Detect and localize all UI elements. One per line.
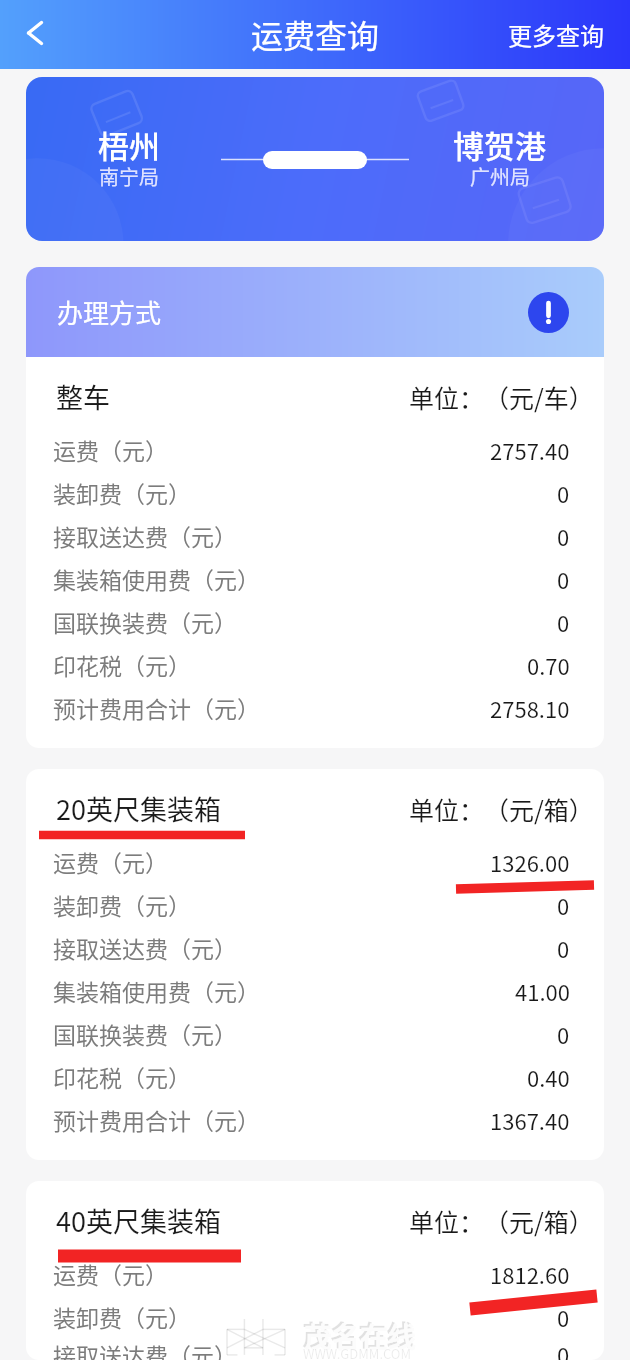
staticText: 运费查询 xyxy=(251,11,380,57)
staticText: 2757.40 xyxy=(490,434,570,466)
staticText: 博贺港 xyxy=(453,122,546,167)
staticText: 梧州 xyxy=(98,122,160,167)
staticText: 装卸费（元） xyxy=(53,1300,191,1333)
button[interactable]: 装卸费（元） xyxy=(26,883,604,926)
staticText: 接取送达费（元） xyxy=(53,1338,237,1360)
staticText: 办理方式 xyxy=(57,293,162,331)
button[interactable]: 更多查询 xyxy=(486,3,630,66)
staticText: 0 xyxy=(557,606,570,638)
button[interactable]: 印花税（元） xyxy=(26,1055,604,1098)
staticText: 接取送达费（元） xyxy=(53,931,237,964)
staticText: 运费（元） xyxy=(53,433,168,466)
staticText: 集装箱使用费（元） xyxy=(53,974,260,1007)
staticText: 41.00 xyxy=(515,975,570,1007)
staticText: 0 xyxy=(557,889,570,921)
staticText: 单位：（元/箱） xyxy=(409,1203,594,1239)
staticText: 国联换装费（元） xyxy=(53,605,237,638)
staticText: 0 xyxy=(557,520,570,552)
staticText: 装卸费（元） xyxy=(53,888,191,921)
button[interactable]: 梧州 xyxy=(26,77,604,241)
button[interactable]: 运费（元） xyxy=(26,840,604,883)
staticText: WWW.GDMM.COM xyxy=(303,1344,412,1360)
button[interactable]: 接取送达费（元） xyxy=(26,514,604,557)
staticText: 运费（元） xyxy=(53,845,168,878)
staticText: 预计费用合计（元） xyxy=(53,1103,260,1136)
staticText: 运费（元） xyxy=(53,1257,168,1290)
button[interactable]: 集装箱使用费（元） xyxy=(26,969,604,1012)
button[interactable]: 预计费用合计（元） xyxy=(26,686,604,729)
staticText: 2758.10 xyxy=(490,692,570,724)
button[interactable]: 接取送达费（元） xyxy=(26,1338,604,1360)
staticText: 1326.00 xyxy=(490,846,570,878)
staticText: 0 xyxy=(557,477,570,509)
staticText: 0 xyxy=(557,1338,570,1360)
button[interactable]: 接取送达费（元） xyxy=(26,926,604,969)
staticText: 0 xyxy=(557,1301,570,1333)
staticText: 单位：（元/箱） xyxy=(409,791,594,827)
button[interactable]: 集装箱使用费（元） xyxy=(26,557,604,600)
staticText: 1812.60 xyxy=(490,1258,570,1290)
staticText: 20英尺集装箱 xyxy=(56,789,221,828)
staticText: 更多查询 xyxy=(508,17,604,52)
button[interactable]: Info xyxy=(528,292,569,333)
button[interactable]: 运费（元） xyxy=(26,428,604,471)
button[interactable]: 装卸费（元） xyxy=(26,1295,604,1338)
staticText: 装卸费（元） xyxy=(53,476,191,509)
button[interactable]: Back xyxy=(0,0,70,69)
staticText: 广州局 xyxy=(470,162,530,191)
staticText: 国联换装费（元） xyxy=(53,1017,237,1050)
button[interactable]: 印花税（元） xyxy=(26,643,604,686)
staticText: 1367.40 xyxy=(490,1104,570,1136)
staticText: 印花税（元） xyxy=(53,648,191,681)
button[interactable]: 运费（元） xyxy=(26,1252,604,1295)
staticText: 0.40 xyxy=(527,1061,570,1093)
staticText: 40英尺集装箱 xyxy=(56,1201,221,1240)
button[interactable]: 国联换装费（元） xyxy=(26,1012,604,1055)
button[interactable]: 装卸费（元） xyxy=(26,471,604,514)
staticText: 0 xyxy=(557,563,570,595)
staticText: 茂名在线 xyxy=(304,1316,417,1357)
button[interactable]: 预计费用合计（元） xyxy=(26,1098,604,1141)
staticText: 0.70 xyxy=(527,649,570,681)
staticText: 0 xyxy=(557,1018,570,1050)
staticText: 0 xyxy=(557,932,570,964)
staticText: 接取送达费（元） xyxy=(53,519,237,552)
staticText: 整车 xyxy=(56,377,110,416)
button[interactable]: 国联换装费（元） xyxy=(26,600,604,643)
staticText: 预计费用合计（元） xyxy=(53,691,260,724)
staticText: 印花税（元） xyxy=(53,1060,191,1093)
staticText: 茂名在线 xyxy=(302,1314,415,1355)
staticText: 单位：（元/车） xyxy=(409,379,594,415)
staticText: 南宁局 xyxy=(99,162,159,191)
staticText: 集装箱使用费（元） xyxy=(53,562,260,595)
